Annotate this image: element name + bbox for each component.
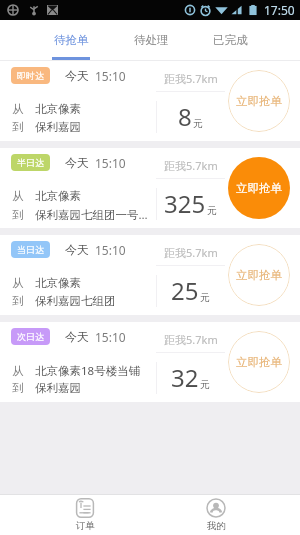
staticText: 立即抢单 [236, 355, 282, 369]
staticText: 距我5.7km [164, 71, 218, 86]
staticText: 待抢单 [54, 33, 89, 47]
staticText: 今天 [65, 68, 89, 83]
button[interactable]: 已完成 [190, 20, 269, 60]
staticText: 25 [171, 274, 199, 307]
staticText: 当日达 [17, 244, 44, 255]
button[interactable]: 即时达 [0, 61, 300, 141]
button[interactable]: 半日达 [0, 148, 300, 228]
staticText: 距我5.7km [164, 158, 218, 173]
button[interactable]: 立即抢单 [228, 244, 290, 306]
staticText: 325 [164, 187, 206, 220]
staticText: 保利嘉园 [35, 381, 81, 395]
staticText: 从 [12, 364, 24, 378]
staticText: 到 [12, 208, 24, 222]
button[interactable]: 订单 [19, 495, 150, 535]
staticText: 15:10 [95, 68, 126, 84]
staticText: 距我5.7km [164, 332, 218, 347]
staticText: 立即抢单 [236, 94, 282, 108]
staticText: 从 [12, 189, 24, 203]
staticText: 保利嘉园七组团一号… [35, 207, 148, 223]
staticText: 8 [178, 100, 192, 133]
staticText: 即时达 [17, 70, 44, 81]
staticText: 15:10 [95, 155, 126, 171]
staticText: 订单 [76, 520, 95, 532]
staticText: 保利嘉园七组团 [35, 294, 116, 308]
staticText: 半日达 [17, 157, 44, 168]
staticText: 已完成 [213, 33, 248, 47]
staticText: 今天 [65, 242, 89, 257]
staticText: 北京像素18号楼当铺 [35, 363, 141, 379]
staticText: 今天 [65, 155, 89, 170]
button[interactable]: 立即抢单 [228, 331, 290, 393]
staticText: 保利嘉园 [35, 120, 81, 134]
staticText: 从 [12, 276, 24, 290]
staticText: 待处理 [134, 33, 169, 47]
staticText: 从 [12, 102, 24, 116]
staticText: 到 [12, 381, 24, 395]
button[interactable]: 待抢单 [31, 20, 111, 60]
staticText: 15:10 [95, 242, 126, 258]
staticText: 32 [171, 361, 199, 394]
staticText: 元 [200, 291, 210, 304]
staticText: 距我5.7km [164, 245, 218, 260]
staticText: 15:10 [95, 329, 126, 345]
button[interactable]: 立即抢单 [228, 157, 290, 219]
staticText: 17:50 [264, 2, 295, 18]
staticText: 到 [12, 294, 24, 308]
staticText: 元 [200, 378, 210, 391]
button[interactable]: 我的 [150, 495, 281, 535]
staticText: 北京像素 [35, 189, 81, 203]
button[interactable]: 待处理 [111, 20, 190, 60]
button[interactable]: 次日达 [0, 322, 300, 402]
staticText: 今天 [65, 329, 89, 344]
button[interactable]: 当日达 [0, 235, 300, 315]
button[interactable]: 立即抢单 [228, 70, 290, 132]
staticText: 我的 [207, 520, 226, 532]
staticText: 北京像素 [35, 102, 81, 116]
staticText: 北京像素 [35, 276, 81, 290]
staticText: 立即抢单 [236, 181, 282, 195]
staticText: 元 [207, 204, 217, 217]
staticText: 元 [193, 117, 203, 130]
staticText: 到 [12, 120, 24, 134]
staticText: 立即抢单 [236, 268, 282, 282]
staticText: 次日达 [17, 331, 44, 342]
